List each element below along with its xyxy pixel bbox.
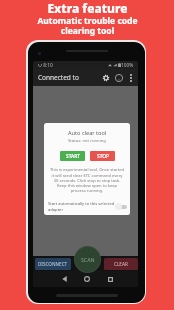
staticText: STOP	[97, 153, 109, 160]
button[interactable]: STOP	[90, 151, 115, 161]
button[interactable]: DISCONNECT	[35, 258, 71, 270]
button[interactable]: Settings	[99, 71, 112, 84]
staticText: Start automatically to this selected ada…	[48, 201, 115, 212]
staticText: Automatic trouble code clearing tool	[37, 15, 138, 36]
button[interactable]: Recents	[103, 272, 117, 286]
button[interactable]: Back	[57, 272, 71, 286]
staticText: DISCONNECT	[38, 261, 68, 267]
staticText: 8:10	[42, 62, 53, 69]
staticText: CLEAR	[114, 261, 128, 267]
button[interactable]: Home	[80, 272, 94, 286]
staticText: Auto clear tool	[68, 129, 107, 137]
staticText: START	[66, 153, 80, 160]
staticText: Extra feature	[47, 0, 128, 16]
button[interactable]: SCAN	[74, 246, 101, 273]
staticText: Connected to	[38, 73, 79, 82]
button[interactable]: More options	[125, 72, 136, 83]
staticText: Status: not running	[68, 138, 106, 144]
staticText: 100%	[121, 62, 134, 69]
button[interactable]: Help	[112, 71, 125, 84]
staticText: This is experimental tool. Once started …	[50, 167, 124, 193]
button[interactable]: START	[60, 151, 85, 161]
button[interactable]: Toggle auto start	[115, 202, 127, 211]
staticText: SCAN	[81, 256, 95, 263]
button[interactable]: CLEAR	[104, 258, 138, 270]
